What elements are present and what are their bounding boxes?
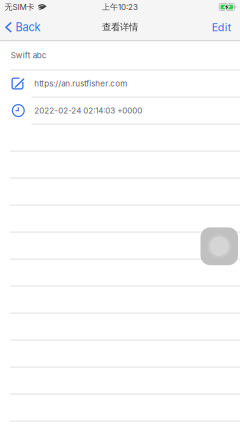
- staticText: https://an.rustfisher.com: [34, 79, 127, 88]
- button[interactable]: AssistiveTouch: [200, 227, 238, 265]
- staticText: 上午10:23: [102, 2, 138, 12]
- staticText: 2022-02-24 02:14:03 +0000: [34, 106, 142, 115]
- staticText: Edit: [212, 21, 231, 34]
- staticText: Back: [15, 21, 40, 34]
- staticText: 查看详情: [102, 21, 138, 33]
- staticText: Swift abc: [11, 50, 47, 60]
- button[interactable]: Back: [0, 14, 46, 40]
- button[interactable]: https://an.rustfisher.com: [0, 70, 240, 97]
- staticText: 无SIM卡: [4, 2, 34, 12]
- button[interactable]: 2022-02-24 02:14:03 +0000: [0, 97, 240, 124]
- button[interactable]: Edit: [206, 14, 240, 40]
